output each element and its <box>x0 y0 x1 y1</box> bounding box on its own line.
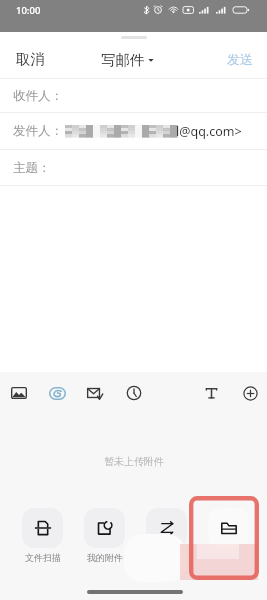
button[interactable]: 写邮件 <box>96 48 159 72</box>
button[interactable]: 发件人： <box>0 113 267 150</box>
button[interactable]: My attachments <box>84 508 125 548</box>
button[interactable]: 发送 <box>219 42 267 69</box>
staticText: 收件人： <box>13 88 63 104</box>
button[interactable]: 取消 <box>0 41 53 70</box>
button[interactable]: 主题： <box>0 150 267 186</box>
button[interactable]: Mail template <box>78 372 112 414</box>
staticText: 主题： <box>13 160 51 176</box>
button[interactable]: Schedule send <box>117 372 151 414</box>
button[interactable]: Browse files <box>208 508 249 548</box>
button[interactable]: Attach link <box>40 372 74 414</box>
button[interactable]: More options <box>233 372 267 414</box>
button[interactable]: Scan document <box>22 508 63 548</box>
staticText: 发件人： <box>13 123 63 139</box>
staticText: 我的附件 <box>87 552 123 563</box>
staticText: 写邮件 <box>101 51 145 69</box>
staticText: l@qq.com> <box>176 123 242 140</box>
button[interactable]: Text format <box>194 372 228 414</box>
staticText: 文件扫描 <box>25 552 61 563</box>
staticText: 10:00 <box>16 4 41 17</box>
button[interactable]: Transfer <box>146 508 187 548</box>
button[interactable]: Insert image <box>2 372 36 414</box>
staticText: 暂未上传附件 <box>104 455 164 468</box>
button[interactable]: 收件人： <box>0 79 267 113</box>
